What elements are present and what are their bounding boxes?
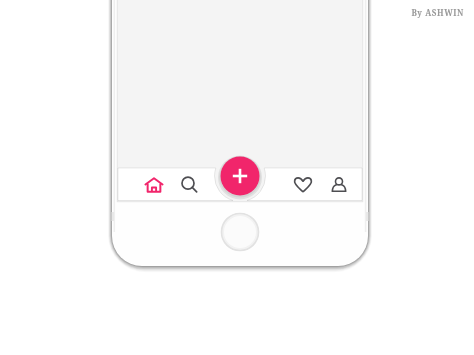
staticText: By ASHWIN	[411, 7, 464, 18]
button[interactable]: Profile	[321, 169, 357, 200]
button[interactable]: Home button	[221, 213, 259, 251]
button[interactable]: Add	[221, 157, 260, 196]
button[interactable]: Likes	[286, 169, 320, 200]
button[interactable]: Search	[172, 169, 208, 200]
button[interactable]: Home	[136, 169, 172, 200]
